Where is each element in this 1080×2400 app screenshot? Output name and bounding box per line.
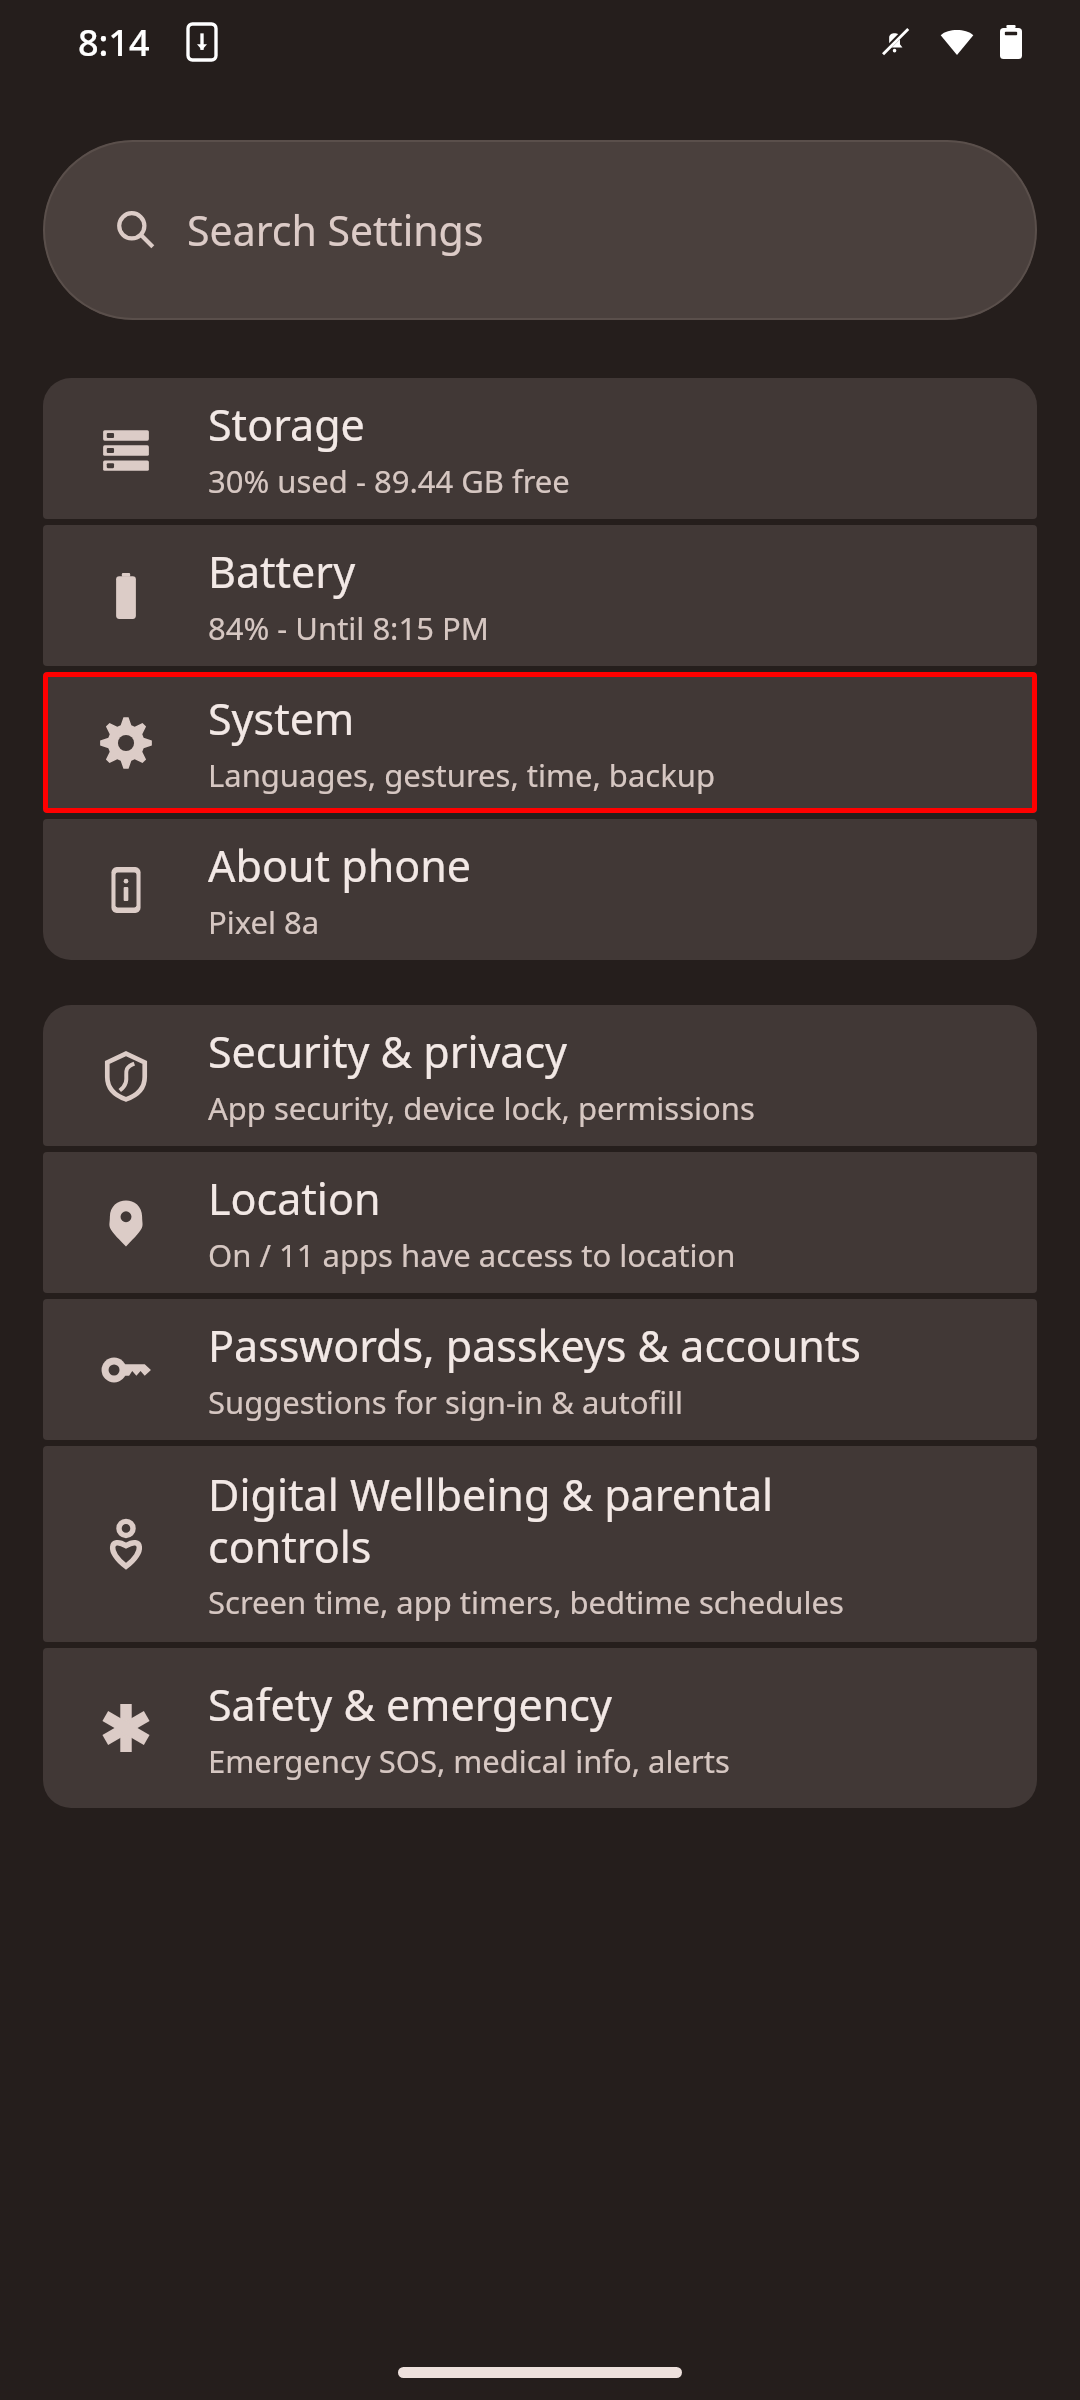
button[interactable]: About phone — [43, 819, 1037, 960]
staticText: 30% used - 89.44 GB free — [208, 460, 570, 502]
staticText: Suggestions for sign-in & autofill — [208, 1381, 684, 1423]
staticText: Passwords, passkeys & accounts — [208, 1316, 861, 1375]
button[interactable]: System — [43, 672, 1037, 813]
button[interactable]: Safety & emergency — [43, 1648, 1037, 1808]
staticText: Screen time, app timers, bedtime schedul… — [208, 1581, 844, 1623]
staticText: 8:14 — [78, 18, 150, 67]
staticText: App security, device lock, permissions — [208, 1087, 755, 1129]
staticText: Languages, gestures, time, backup — [208, 754, 715, 796]
staticText: Battery — [208, 542, 356, 601]
button[interactable]: Security & privacy — [43, 1005, 1037, 1146]
button[interactable]: Storage — [43, 378, 1037, 519]
staticText: On / 11 apps have access to location — [208, 1234, 736, 1276]
button[interactable]: Search Settings — [43, 140, 1037, 320]
staticText: Emergency SOS, medical info, alerts — [208, 1740, 730, 1782]
staticText: Search Settings — [187, 202, 484, 258]
staticText: Safety & emergency — [208, 1675, 612, 1734]
staticText: Digital Wellbeing & parental controls — [208, 1465, 774, 1575]
staticText: System — [208, 689, 355, 748]
button[interactable]: Location — [43, 1152, 1037, 1293]
staticText: Security & privacy — [208, 1022, 568, 1081]
button[interactable]: Passwords, passkeys & accounts — [43, 1299, 1037, 1440]
button[interactable]: Battery — [43, 525, 1037, 666]
staticText: About phone — [208, 836, 472, 895]
staticText: Pixel 8a — [208, 901, 320, 943]
staticText: Storage — [208, 395, 365, 454]
staticText: 84% - Until 8:15 PM — [208, 607, 489, 649]
staticText: Location — [208, 1169, 381, 1228]
button[interactable]: Digital Wellbeing & parental controls — [43, 1446, 1037, 1642]
